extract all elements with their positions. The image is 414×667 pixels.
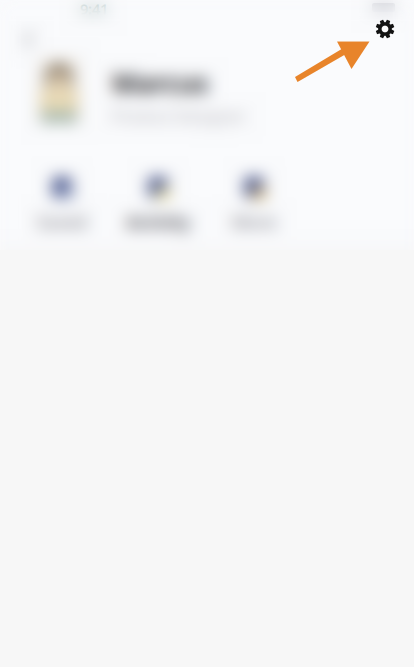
staticText: Saved [37, 210, 87, 233]
staticText: Marcus [112, 65, 208, 100]
button[interactable]: Settings [363, 7, 407, 51]
button[interactable]: Back [9, 17, 48, 62]
staticText: More [232, 210, 276, 233]
staticText: 9:41 [80, 0, 108, 18]
button[interactable]: More [206, 178, 302, 230]
button[interactable]: Saved [14, 178, 110, 230]
staticText: Activity [126, 210, 189, 233]
button[interactable]: Activity [110, 178, 206, 230]
